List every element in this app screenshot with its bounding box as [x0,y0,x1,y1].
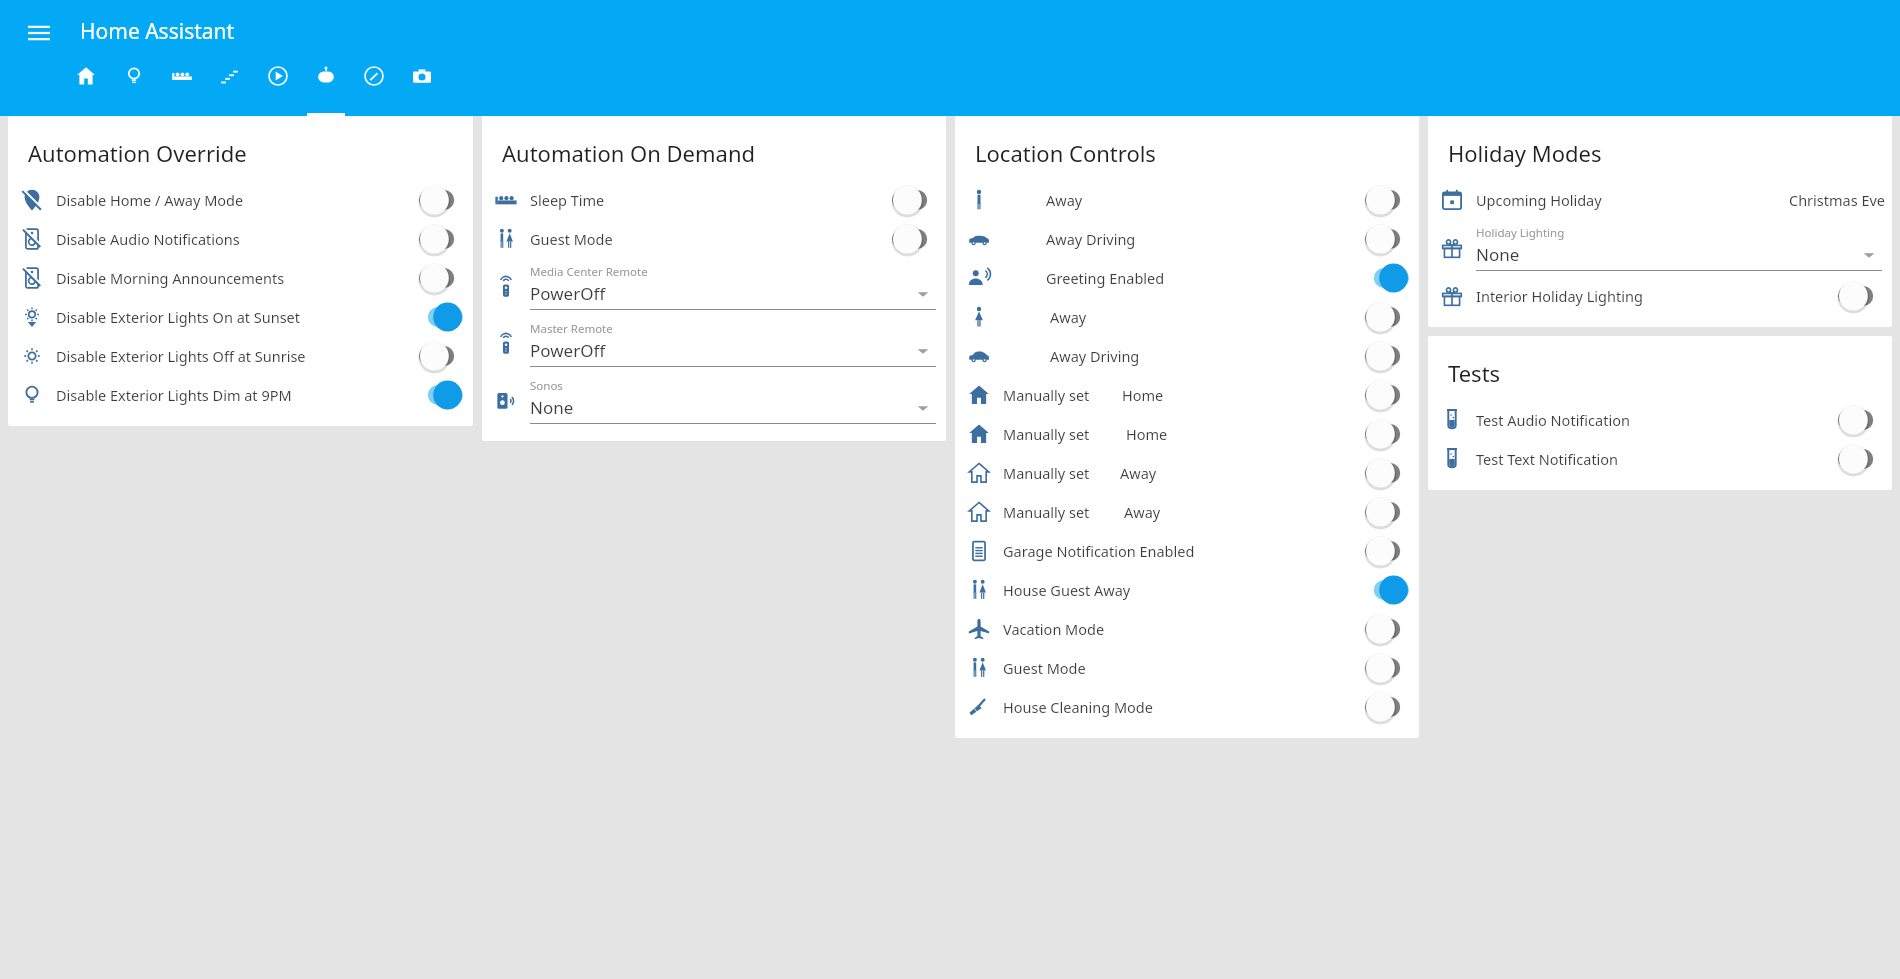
staticText: Guest Mode [530,229,613,249]
button[interactable]: House Cleaning Mode [955,687,1419,726]
button[interactable]: Away [955,180,1419,219]
button[interactable] [419,341,463,371]
staticText: Sonos [530,378,563,394]
button[interactable]: Media [254,58,302,116]
button[interactable] [1365,380,1409,410]
button[interactable]: Disable Exterior Lights Off at Sunrise [8,336,473,375]
button[interactable]: Disable Exterior Lights On at Sunset [8,297,473,336]
staticText: Away [1046,190,1083,210]
staticText: PowerOff [530,282,606,305]
staticText: Away [1120,463,1157,483]
button[interactable]: Greeting Enabled [955,258,1419,297]
button[interactable]: Away Driving [955,336,1419,375]
button[interactable]: Manually set [955,492,1419,531]
button[interactable] [892,224,936,254]
staticText: Master Remote [530,321,613,337]
button[interactable]: Upcoming Holiday [1428,180,1892,219]
button[interactable]: Disable Home / Away Mode [8,180,473,219]
button[interactable] [1365,419,1409,449]
button[interactable]: Test Audio Notification [1428,400,1892,439]
staticText: Disable Exterior Lights On at Sunset [56,307,301,327]
button[interactable]: Sleep Time [482,180,946,219]
button[interactable]: Automation [302,58,350,116]
staticText: None [1476,243,1520,266]
button[interactable]: Lights [110,58,158,116]
button[interactable]: Test Text Notification [1428,439,1892,478]
button[interactable] [419,302,463,332]
button[interactable] [419,185,463,215]
button[interactable] [1365,692,1409,722]
staticText: Disable Audio Notifications [56,229,240,249]
button[interactable] [1838,281,1882,311]
button[interactable] [1365,458,1409,488]
staticText: Tests [1448,358,1501,388]
staticText: Disable Home / Away Mode [56,190,244,210]
staticText: Test Text Notification [1476,449,1619,469]
button[interactable]: Vacation Mode [955,609,1419,648]
staticText: Disable Morning Announcements [56,268,285,288]
staticText: None [530,396,574,419]
button[interactable] [1365,614,1409,644]
button[interactable] [1365,536,1409,566]
button[interactable]: Away [955,297,1419,336]
button[interactable]: Bedrooms [158,58,206,116]
staticText: Disable Exterior Lights Off at Sunrise [56,346,306,366]
staticText: Away Driving [1050,346,1140,366]
button[interactable] [1365,653,1409,683]
button[interactable]: Holiday Lighting [1428,219,1892,276]
staticText: Vacation Mode [1003,619,1105,639]
staticText: Greeting Enabled [1046,268,1165,288]
staticText: Manually set [1003,424,1090,444]
button[interactable]: Home [62,58,110,116]
button[interactable] [1365,341,1409,371]
button[interactable]: Cameras [398,58,446,116]
button[interactable] [1365,224,1409,254]
button[interactable]: Open navigation menu [20,14,58,52]
button[interactable] [1838,444,1882,474]
staticText: Away [1124,502,1161,522]
staticText: Home Assistant [80,17,235,46]
button[interactable] [1365,263,1409,293]
staticText: Away Driving [1046,229,1136,249]
button[interactable] [892,185,936,215]
button[interactable]: Interior Holiday Lighting [1428,276,1892,315]
staticText: Guest Mode [1003,658,1086,678]
staticText: Manually set [1003,463,1090,483]
button[interactable] [1365,575,1409,605]
button[interactable] [419,224,463,254]
staticText: PowerOff [530,339,606,362]
staticText: Holiday Modes [1448,138,1602,168]
staticText: Home [1126,424,1168,444]
staticText: Away [1050,307,1087,327]
button[interactable]: Guest Mode [955,648,1419,687]
staticText: Home [1122,385,1164,405]
button[interactable] [419,380,463,410]
button[interactable] [1365,185,1409,215]
staticText: Holiday Lighting [1476,225,1565,241]
button[interactable]: Disable Audio Notifications [8,219,473,258]
button[interactable]: Manually set [955,414,1419,453]
button[interactable]: Disable Exterior Lights Dim at 9PM [8,375,473,414]
button[interactable] [1365,302,1409,332]
button[interactable]: Manually set [955,453,1419,492]
button[interactable]: Upstairs [206,58,254,116]
button[interactable] [419,263,463,293]
button[interactable]: Media Center Remote [482,258,946,315]
staticText: Media Center Remote [530,264,648,280]
button[interactable] [1838,405,1882,435]
staticText: Manually set [1003,502,1090,522]
staticText: Disable Exterior Lights Dim at 9PM [56,385,292,405]
staticText: Automation Override [28,138,247,168]
staticText: Manually set [1003,385,1090,405]
button[interactable]: Master Remote [482,315,946,372]
button[interactable]: House Guest Away [955,570,1419,609]
button[interactable]: Guest Mode [482,219,946,258]
button[interactable]: Disable Morning Announcements [8,258,473,297]
staticText: Christmas Eve [1789,190,1886,210]
button[interactable]: Manually set [955,375,1419,414]
button[interactable] [1365,497,1409,527]
button[interactable]: Garage Notification Enabled [955,531,1419,570]
button[interactable]: Away Driving [955,219,1419,258]
button[interactable]: Sensors [350,58,398,116]
button[interactable]: Sonos [482,372,946,429]
